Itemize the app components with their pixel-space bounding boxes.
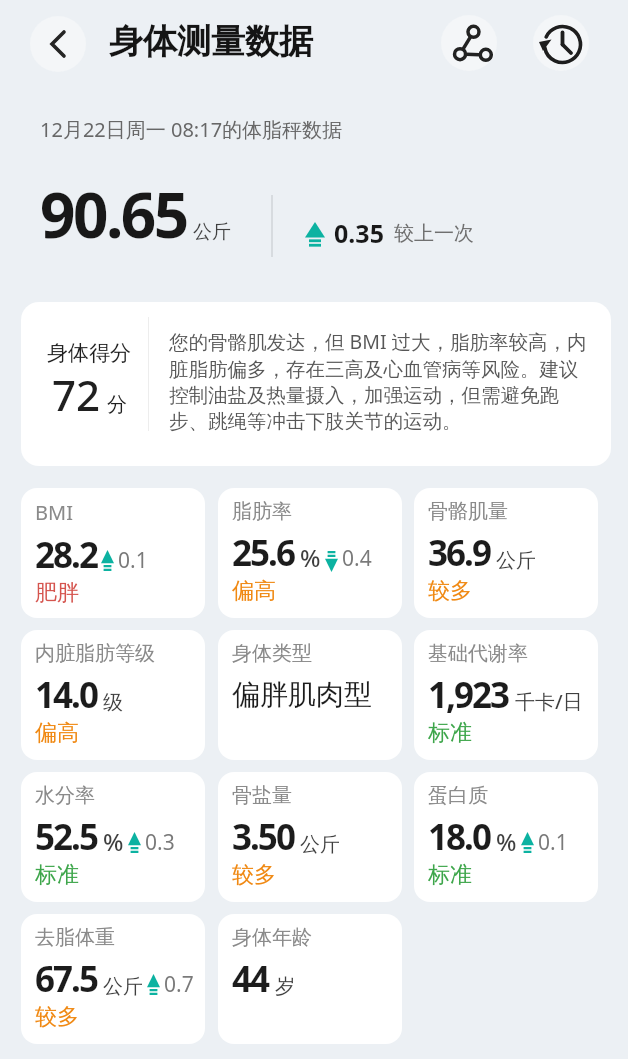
staticText: 较上一次	[394, 221, 474, 246]
staticText: 52.5	[35, 813, 97, 861]
button[interactable]: 身体年龄	[218, 914, 402, 1044]
staticText: 分	[107, 392, 127, 417]
staticText: 较多	[35, 1003, 79, 1031]
button[interactable]: 蛋白质	[414, 772, 598, 902]
button[interactable]: BMI	[21, 488, 205, 618]
staticText: 身体测量数据	[109, 20, 313, 63]
staticText: 级	[103, 690, 123, 715]
staticText: 偏高	[35, 719, 79, 747]
staticText: 内脏脂肪等级	[35, 641, 155, 666]
staticText: 44	[232, 955, 269, 1003]
staticText: 12月22日周一 08:17的体脂秤数据	[40, 116, 343, 143]
button[interactable]: 脂肪率	[218, 488, 402, 618]
staticText: 肥胖	[35, 579, 79, 607]
staticText: 28.2	[35, 531, 97, 579]
button[interactable]: 身体得分	[21, 302, 611, 466]
staticText: 骨盐量	[232, 783, 292, 808]
staticText: 偏胖肌肉型	[232, 677, 372, 712]
button[interactable]	[533, 15, 589, 71]
staticText: 0.1	[538, 828, 568, 857]
staticText: 公斤	[193, 220, 231, 244]
button[interactable]: 水分率	[21, 772, 205, 902]
staticText: 90.65	[40, 172, 187, 256]
button[interactable]: 内脏脂肪等级	[21, 630, 205, 760]
staticText: 72	[52, 366, 101, 423]
button[interactable]: 基础代谢率	[414, 630, 598, 760]
staticText: 14.0	[35, 671, 97, 719]
staticText: 身体类型	[232, 641, 312, 666]
staticText: 1,923	[428, 671, 509, 719]
staticText: 0.7	[164, 970, 194, 999]
staticText: %	[496, 825, 517, 858]
staticText: 0.4	[342, 544, 372, 573]
staticText: 67.5	[35, 955, 97, 1003]
staticText: 水分率	[35, 783, 95, 808]
staticText: 标准	[428, 719, 472, 747]
staticText: 身体年龄	[232, 925, 312, 950]
staticText: 0.3	[145, 828, 175, 857]
staticText: 标准	[35, 861, 79, 889]
staticText: 您的骨骼肌发达，但 BMI 过大，脂肪率较高，内 脏脂肪偏多，存在三高及心血管病…	[169, 328, 587, 434]
button[interactable]: 骨盐量	[218, 772, 402, 902]
staticText: 基础代谢率	[428, 641, 528, 666]
staticText: 较多	[428, 577, 472, 605]
button[interactable]: 去脂体重	[21, 914, 205, 1044]
staticText: 偏高	[232, 577, 276, 605]
staticText: %	[103, 825, 124, 858]
staticText: 0.1	[118, 546, 148, 575]
staticText: 公斤	[496, 548, 536, 573]
staticText: 蛋白质	[428, 783, 488, 808]
staticText: 18.0	[428, 813, 490, 861]
staticText: 36.9	[428, 529, 490, 577]
staticText: 较多	[232, 861, 276, 889]
staticText: 岁	[275, 974, 295, 999]
button[interactable]: 身体类型	[218, 630, 402, 760]
staticText: 标准	[428, 861, 472, 889]
staticText: 公斤	[103, 974, 143, 999]
button[interactable]	[441, 15, 497, 71]
button[interactable]	[30, 16, 86, 72]
staticText: 脂肪率	[232, 499, 292, 524]
staticText: 3.50	[232, 813, 294, 861]
staticText: 去脂体重	[35, 925, 115, 950]
staticText: 0.35	[334, 216, 384, 250]
staticText: BMI	[35, 499, 73, 526]
button[interactable]: 骨骼肌量	[414, 488, 598, 618]
staticText: 骨骼肌量	[428, 499, 508, 524]
staticText: 公斤	[300, 832, 340, 857]
staticText: 千卡/日	[515, 688, 583, 715]
staticText: %	[300, 541, 321, 574]
staticText: 25.6	[232, 529, 294, 577]
staticText: 身体得分	[47, 340, 131, 366]
